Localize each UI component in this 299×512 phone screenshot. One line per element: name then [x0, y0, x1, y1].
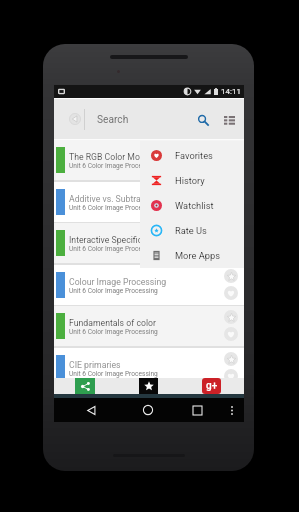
staticText: CIE primaries: [69, 360, 121, 370]
staticText: Unit 6 Color Image Processing: [69, 204, 158, 212]
button[interactable]: List view: [218, 110, 240, 132]
staticText: Watchlist: [175, 200, 214, 211]
button[interactable]: Additive vs. Subtractive: [54, 182, 244, 222]
button[interactable]: Google Plus: [202, 378, 221, 394]
staticText: Unit 6 Color Image Processing: [69, 245, 158, 253]
staticText: Unit 6 Color Image Processing: [69, 287, 158, 295]
button[interactable]: Interactive Specification: [54, 223, 244, 263]
staticText: Unit 6 Color Image Processing: [69, 328, 158, 336]
button[interactable]: Bookmark: [224, 310, 238, 324]
button[interactable]: History: [140, 168, 244, 193]
button[interactable]: CIE primaries: [54, 348, 244, 388]
button[interactable]: The RGB Color Model: [54, 140, 244, 180]
button[interactable]: Back: [65, 109, 85, 129]
button[interactable]: More Apps: [140, 243, 244, 268]
button[interactable]: Favorite: [224, 286, 238, 300]
button[interactable]: Favorite: [224, 327, 238, 341]
staticText: Additive vs. Subtractive: [69, 194, 160, 204]
staticText: Colour Image Processing: [69, 277, 167, 287]
button[interactable]: Share: [75, 378, 95, 394]
button[interactable]: Bookmark: [224, 269, 238, 283]
staticText: The RGB Color Model: [69, 152, 152, 162]
button[interactable]: Rate Us: [140, 218, 244, 243]
staticText: Fundamentals of color: [69, 318, 156, 328]
button[interactable]: Recent apps: [186, 398, 208, 422]
staticText: 14:11: [221, 87, 241, 96]
button[interactable]: Back: [80, 398, 102, 422]
staticText: More Apps: [175, 250, 221, 261]
button[interactable]: Favorite: [224, 369, 238, 383]
button[interactable]: Bookmark: [224, 352, 238, 366]
button[interactable]: Favorites: [140, 143, 244, 168]
button[interactable]: More options: [224, 398, 240, 422]
staticText: Favorites: [175, 150, 213, 161]
button[interactable]: Colour Image Processing: [54, 265, 244, 305]
staticText: Unit 6 Color Image Processing: [69, 162, 158, 170]
staticText: History: [175, 175, 205, 186]
button[interactable]: Watchlist: [140, 193, 244, 218]
staticText: Rate Us: [175, 225, 207, 236]
staticText: g+: [206, 380, 218, 392]
staticText: Unit 6 Color Image Processing: [69, 370, 158, 378]
button[interactable]: Search: [192, 109, 214, 131]
staticText: Interactive Specification: [69, 235, 162, 245]
button[interactable]: Rate app: [139, 378, 158, 394]
button[interactable]: Home: [137, 398, 159, 422]
staticText: Search: [97, 114, 129, 126]
button[interactable]: Fundamentals of color: [54, 306, 244, 346]
